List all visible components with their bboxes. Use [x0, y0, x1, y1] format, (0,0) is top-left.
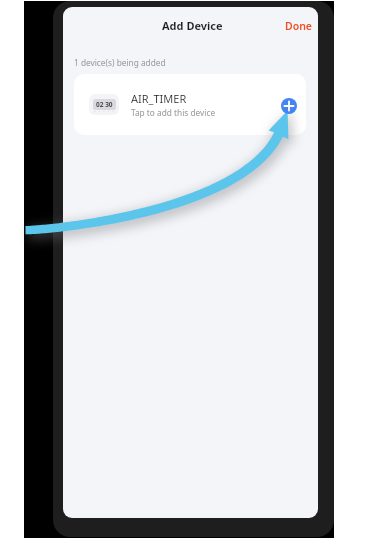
staticText: Tap to add this device	[131, 107, 216, 118]
staticText: 02 30	[96, 100, 113, 109]
staticText: 1 device(s) being added	[74, 57, 166, 68]
button[interactable]: Add device	[281, 98, 297, 114]
staticText: AIR_TIMER	[131, 91, 187, 106]
staticText: Done	[285, 19, 313, 33]
button[interactable]: 02 30	[74, 74, 306, 135]
staticText: Add Device	[162, 18, 223, 33]
button[interactable]: Done	[279, 14, 318, 38]
